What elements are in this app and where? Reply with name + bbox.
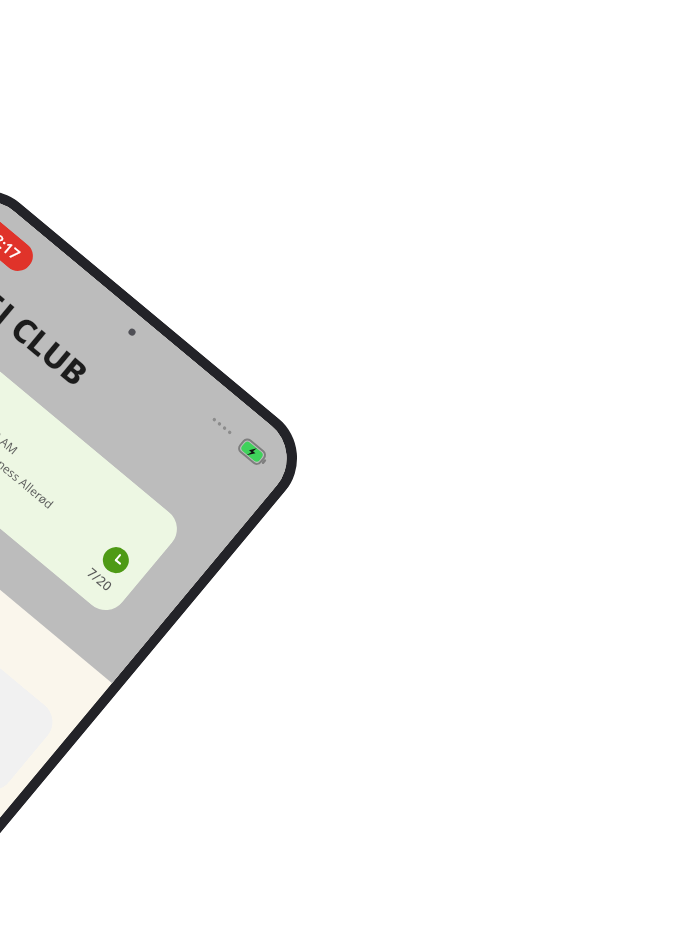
staticText: CAVE, The Club Fitness Allerød xyxy=(0,391,57,512)
other: Battery charging xyxy=(237,437,270,468)
staticText: 08:17 xyxy=(0,224,25,264)
button[interactable]: 08:17 xyxy=(0,211,39,277)
staticText: ...NEJ CLUB xyxy=(0,244,98,396)
staticText: 7/20 xyxy=(83,563,116,595)
button[interactable]: TELL US ABOUT U... xyxy=(0,471,61,799)
staticText: 9:00 AM - 10:00 AM xyxy=(0,376,22,457)
button[interactable]: Tue xyxy=(0,285,186,619)
